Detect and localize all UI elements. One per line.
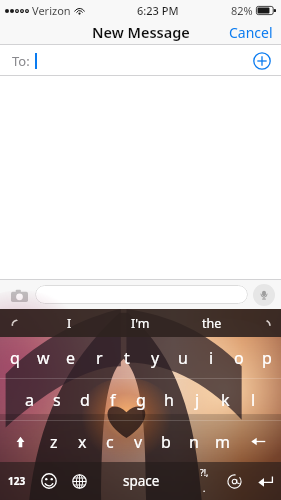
staticText: j bbox=[195, 389, 200, 411]
staticText: Cancel bbox=[229, 23, 273, 42]
staticText: p bbox=[262, 347, 272, 369]
button[interactable]: 123 bbox=[0, 462, 34, 500]
staticText: f bbox=[110, 389, 116, 411]
button[interactable]: ?!, bbox=[189, 462, 219, 500]
staticText: n bbox=[189, 431, 199, 453]
button[interactable]: I'm bbox=[105, 309, 176, 337]
staticText: Verizon bbox=[32, 3, 71, 18]
button[interactable]: k bbox=[211, 379, 239, 420]
button[interactable]: z bbox=[40, 421, 68, 462]
button[interactable]: Emoji bbox=[34, 462, 64, 500]
button[interactable]: u bbox=[169, 337, 197, 378]
staticText: o bbox=[234, 347, 244, 369]
button[interactable]: o bbox=[225, 337, 253, 378]
staticText: space bbox=[123, 472, 160, 490]
button[interactable] bbox=[35, 285, 248, 304]
button[interactable]: Undo bbox=[0, 309, 34, 337]
staticText: l bbox=[251, 389, 256, 411]
button[interactable]: y bbox=[141, 337, 169, 378]
button[interactable]: Change keyboard bbox=[64, 462, 94, 500]
button[interactable]: Camera bbox=[6, 284, 32, 306]
button[interactable]: v bbox=[124, 421, 152, 462]
staticText: v bbox=[134, 431, 143, 453]
button[interactable]: s bbox=[43, 379, 71, 420]
staticText: 123 bbox=[8, 474, 26, 488]
button[interactable]: the bbox=[176, 309, 247, 337]
button[interactable]: Return bbox=[249, 462, 281, 500]
button[interactable]: I bbox=[34, 309, 105, 337]
staticText: the bbox=[202, 315, 222, 332]
button[interactable]: r bbox=[85, 337, 113, 378]
button[interactable]: h bbox=[155, 379, 183, 420]
button[interactable]: i bbox=[197, 337, 225, 378]
staticText: d bbox=[80, 389, 90, 411]
button[interactable]: q bbox=[0, 337, 29, 378]
staticText: . bbox=[203, 483, 206, 495]
staticText: g bbox=[136, 389, 146, 411]
button[interactable]: Cancel bbox=[229, 20, 273, 44]
staticText: To: bbox=[12, 52, 30, 70]
button[interactable]: b bbox=[152, 421, 180, 462]
staticText: 6:23 PM bbox=[137, 3, 179, 18]
button[interactable]: Shift bbox=[0, 421, 40, 462]
staticText: I'm bbox=[131, 315, 150, 332]
button[interactable]: n bbox=[180, 421, 208, 462]
button[interactable]: Add contact bbox=[253, 52, 271, 70]
staticText: q bbox=[10, 347, 20, 369]
button[interactable]: space bbox=[94, 462, 189, 500]
staticText: z bbox=[50, 431, 58, 453]
button[interactable]: d bbox=[71, 379, 99, 420]
staticText: h bbox=[164, 389, 174, 411]
button[interactable]: j bbox=[183, 379, 211, 420]
button[interactable]: a bbox=[15, 379, 43, 420]
staticText: s bbox=[53, 389, 61, 411]
staticText: New Message bbox=[92, 22, 190, 42]
button[interactable]: x bbox=[68, 421, 96, 462]
staticText: x bbox=[78, 431, 87, 453]
button[interactable]: e bbox=[57, 337, 85, 378]
button[interactable]: g bbox=[127, 379, 155, 420]
button[interactable]: p bbox=[253, 337, 281, 378]
staticText: e bbox=[66, 347, 76, 369]
staticText: 82% bbox=[231, 3, 253, 18]
staticText: ?!, bbox=[200, 467, 209, 479]
button[interactable]: t bbox=[113, 337, 141, 378]
staticText: t bbox=[124, 347, 130, 369]
staticText: I bbox=[67, 315, 72, 332]
staticText: a bbox=[25, 389, 34, 411]
button[interactable]: At sign bbox=[219, 462, 249, 500]
staticText: u bbox=[178, 347, 188, 369]
button[interactable]: m bbox=[208, 421, 236, 462]
staticText: i bbox=[209, 347, 214, 369]
staticText: w bbox=[37, 347, 50, 369]
button[interactable]: w bbox=[29, 337, 57, 378]
button[interactable]: Dictation bbox=[253, 284, 275, 306]
button[interactable]: f bbox=[99, 379, 127, 420]
staticText: y bbox=[151, 347, 160, 369]
staticText: b bbox=[161, 431, 171, 453]
staticText: c bbox=[106, 431, 114, 453]
button[interactable]: l bbox=[239, 379, 267, 420]
button[interactable]: c bbox=[96, 421, 124, 462]
button[interactable]: Backspace bbox=[236, 421, 281, 462]
staticText: m bbox=[215, 431, 230, 453]
button[interactable]: Redo bbox=[247, 309, 281, 337]
staticText: r bbox=[96, 347, 103, 369]
staticText: k bbox=[221, 389, 230, 411]
